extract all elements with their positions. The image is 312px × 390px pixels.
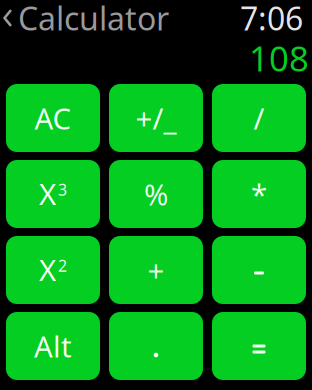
staticText: 108 [249, 35, 309, 81]
button[interactable]: Equals [212, 312, 306, 380]
button[interactable]: Minus [212, 236, 306, 304]
button[interactable]: Alt [6, 312, 100, 380]
staticText: 7:06 [240, 0, 303, 39]
staticText: Calculator [18, 0, 169, 39]
button[interactable]: % [109, 160, 203, 228]
staticText: X [39, 250, 56, 289]
staticText: 3 [58, 179, 67, 200]
staticText: Alt [34, 326, 72, 365]
button[interactable]: / [212, 84, 306, 152]
button[interactable]: + [109, 236, 203, 304]
button[interactable]: AC [6, 84, 100, 152]
staticText: + [147, 250, 164, 289]
button[interactable]: Decimal point [109, 312, 203, 380]
button[interactable]: +/_ [109, 84, 203, 152]
staticText: 2 [58, 255, 67, 276]
staticText: % [144, 174, 168, 213]
button[interactable]: * [212, 160, 306, 228]
staticText: +/_ [135, 98, 176, 137]
button[interactable]: X cubed [6, 160, 100, 228]
staticText: X [39, 174, 56, 213]
staticText: / [253, 98, 264, 137]
staticText: * [251, 174, 267, 213]
button[interactable]: X squared [6, 236, 100, 304]
button[interactable]: Back to Calculator [0, 3, 175, 33]
staticText: AC [34, 98, 71, 137]
